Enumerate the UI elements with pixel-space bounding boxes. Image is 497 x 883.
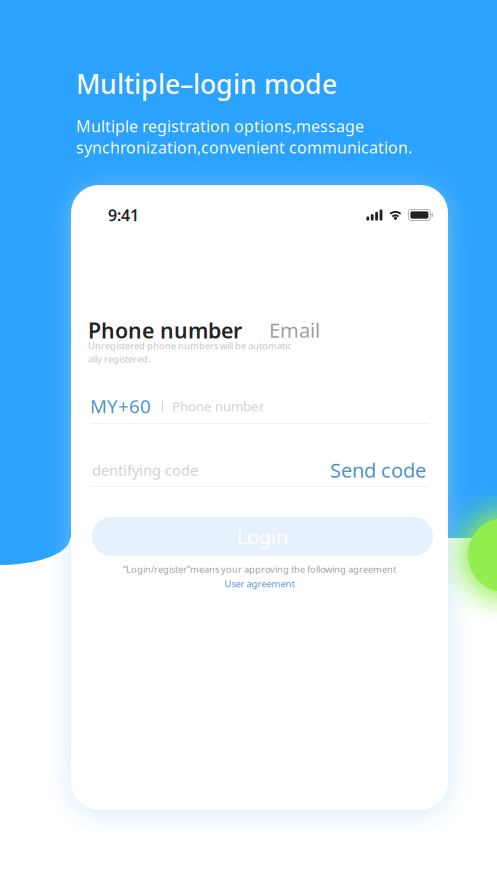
staticText: Email [269,317,320,343]
staticText: ally registered. [88,353,151,365]
button[interactable]: MY+60 [90,394,151,418]
staticText: Phone number [88,316,242,344]
staticText: MY+60 [90,394,151,418]
staticText: Unregistered phone numbers will be autom… [88,339,291,352]
staticText: synchronization,convenient communication… [76,137,412,158]
button[interactable]: Phone number [88,316,242,344]
button[interactable]: Send code [330,457,426,483]
staticText: Multiple registration options,message [76,115,364,137]
staticText: dentifying code [92,460,198,480]
staticText: Login [237,523,288,550]
button[interactable]: Email [269,317,320,344]
staticText: Phone number [172,397,265,415]
staticText: “Login/register”means your approving the… [123,563,396,575]
button[interactable]: Login [92,517,433,556]
staticText: 9:41 [108,204,139,226]
staticText: User agreement [224,577,294,590]
staticText: Send code [330,457,426,483]
staticText: Multiple–login mode [76,66,337,101]
button[interactable]: User agreement [224,577,294,590]
